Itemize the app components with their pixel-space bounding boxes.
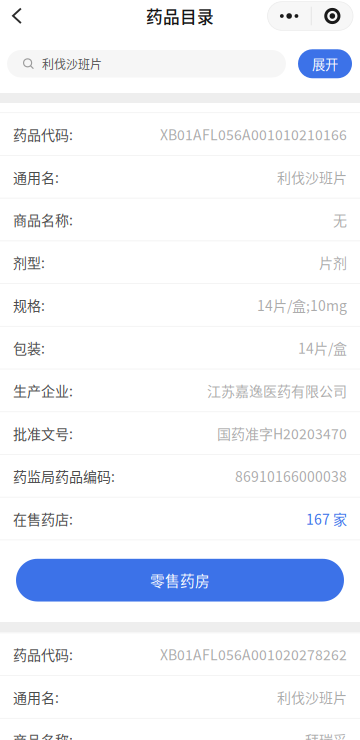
staticText: 通用名: bbox=[13, 687, 59, 707]
staticText: 药品目录 bbox=[146, 4, 214, 28]
button[interactable]: Close mini program bbox=[312, 2, 353, 30]
button[interactable]: 批准文号: bbox=[0, 412, 360, 454]
staticText: 商品名称: bbox=[13, 730, 73, 740]
button[interactable]: 药品代码: bbox=[0, 113, 360, 155]
button[interactable]: 通用名: bbox=[0, 676, 360, 718]
staticText: 零售药房 bbox=[150, 569, 210, 591]
button[interactable]: 药品代码: bbox=[0, 633, 360, 675]
staticText: 通用名: bbox=[13, 167, 59, 187]
staticText: 江苏嘉逸医药有限公司 bbox=[207, 380, 347, 400]
staticText: 药品代码: bbox=[13, 644, 73, 664]
staticText: 在售药店: bbox=[13, 508, 73, 529]
button[interactable]: 展开 bbox=[298, 49, 352, 78]
button[interactable]: 零售药房 bbox=[16, 559, 344, 601]
staticText: 片剂 bbox=[319, 252, 347, 272]
staticText: 86910166000038 bbox=[235, 466, 347, 486]
staticText: 药品代码: bbox=[13, 124, 73, 144]
staticText: 利伐沙班片 bbox=[277, 167, 347, 187]
staticText: XB01AFL056A001010210166 bbox=[160, 124, 347, 144]
staticText: 利伐沙班片 bbox=[277, 687, 347, 707]
button[interactable]: Back bbox=[0, 0, 34, 32]
staticText: 167 家 bbox=[306, 508, 347, 529]
staticText: 剂型: bbox=[13, 252, 45, 272]
staticText: 无 bbox=[333, 209, 347, 230]
button[interactable]: 规格: bbox=[0, 284, 360, 326]
staticText: 展开 bbox=[312, 54, 338, 73]
button[interactable]: 通用名: bbox=[0, 156, 360, 198]
button[interactable]: 商品名称: bbox=[0, 719, 360, 740]
staticText: 利伐沙班片 bbox=[42, 55, 102, 72]
staticText: 商品名称: bbox=[13, 209, 73, 230]
button[interactable]: 剂型: bbox=[0, 241, 360, 283]
staticText: 国药准字H20203470 bbox=[217, 423, 347, 443]
staticText: 批准文号: bbox=[13, 423, 73, 443]
button[interactable]: 药监局药品编码: bbox=[0, 455, 360, 497]
button[interactable]: 商品名称: bbox=[0, 198, 360, 240]
staticText: 包装: bbox=[13, 337, 45, 358]
staticText: 14片/盒 bbox=[298, 337, 347, 358]
staticText: 14片/盒;10mg bbox=[257, 295, 347, 315]
button[interactable]: More options bbox=[267, 2, 311, 30]
staticText: 规格: bbox=[13, 295, 45, 315]
button[interactable]: 生产企业: bbox=[0, 369, 360, 411]
button[interactable]: 在售药店: bbox=[0, 498, 360, 539]
staticText: 生产企业: bbox=[13, 380, 73, 400]
button[interactable]: 包装: bbox=[0, 327, 360, 369]
staticText: 药监局药品编码: bbox=[13, 466, 115, 486]
staticText: XB01AFL056A001020278262 bbox=[160, 644, 347, 664]
staticText: 拜瑞妥 bbox=[305, 730, 347, 740]
